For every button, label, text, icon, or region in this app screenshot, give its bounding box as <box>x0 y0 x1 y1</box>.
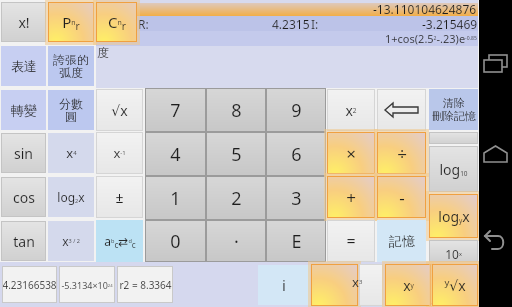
button[interactable]: 清除 刪除記憶 <box>429 89 478 130</box>
button[interactable]: logyx <box>429 194 478 238</box>
staticText: -13.110104624876 <box>373 1 477 16</box>
staticText: = <box>346 230 356 252</box>
staticText: cos <box>13 188 35 207</box>
button[interactable] <box>429 132 478 144</box>
button[interactable]: x! <box>1 2 46 42</box>
staticText: x! <box>18 13 30 32</box>
staticText: Pnr <box>62 12 80 33</box>
button[interactable] <box>377 89 426 131</box>
button[interactable]: 記憶 <box>377 220 426 262</box>
button[interactable]: 7 <box>145 88 206 132</box>
button[interactable]: 10x <box>429 240 478 262</box>
staticText: x3 / 2 <box>62 233 80 249</box>
staticText: R: <box>138 16 149 31</box>
staticText: i <box>282 275 286 295</box>
button[interactable]: · <box>206 220 266 262</box>
button[interactable]: log10 <box>429 146 478 192</box>
button[interactable]: 3 <box>266 176 326 220</box>
staticText: ± <box>115 188 124 207</box>
staticText: x3 <box>352 273 363 289</box>
button[interactable]: E <box>266 220 326 262</box>
staticText: 7 <box>170 98 181 123</box>
staticText: 分數 圓 <box>59 96 83 125</box>
staticText: + <box>346 186 356 209</box>
staticText: r2 = 8.3364 <box>119 278 172 292</box>
button[interactable]: 6 <box>266 132 326 176</box>
staticText: logyx <box>438 207 470 226</box>
button[interactable]: xy <box>385 264 431 306</box>
button[interactable]: 轉變 <box>1 90 46 130</box>
button[interactable]: = <box>327 220 375 262</box>
button[interactable]: -5.3134×1024 <box>59 266 115 303</box>
button[interactable]: 1 <box>145 176 206 220</box>
button[interactable]: x3 / 2 <box>48 221 94 261</box>
staticText: × <box>346 142 356 165</box>
button[interactable]: Cnr <box>96 2 137 42</box>
staticText: 轉變 <box>11 102 37 118</box>
button[interactable]: Pnr <box>48 2 94 42</box>
button[interactable]: 誇張的 弧度 <box>48 46 94 86</box>
staticText: 清除 刪除記憶 <box>432 96 476 123</box>
staticText: 4 <box>170 142 181 167</box>
button[interactable]: x-1 <box>96 132 143 174</box>
staticText: -5.3134×1024 <box>61 279 113 291</box>
staticText: x2 <box>345 101 357 120</box>
button[interactable]: 9 <box>266 88 326 132</box>
button[interactable]: tan <box>1 221 46 261</box>
button[interactable]: ÷ <box>377 132 426 174</box>
staticText: 表達 <box>11 58 37 74</box>
button[interactable]: x4 <box>48 133 94 173</box>
staticText: log2x <box>57 189 85 205</box>
staticText: tan <box>13 232 35 251</box>
staticText: sin <box>14 144 33 163</box>
button[interactable]: sin <box>1 133 46 173</box>
button[interactable]: i <box>258 265 310 305</box>
button[interactable]: 2 <box>206 176 266 220</box>
staticText: 1+cos(2.52-.23)e-0.85 <box>385 31 477 46</box>
staticText: 6 <box>291 142 302 167</box>
staticText: 1 <box>170 186 181 211</box>
button[interactable]: 4.23166538 <box>2 266 57 303</box>
staticText: -3.215469 <box>422 16 478 31</box>
button[interactable]: 分數 圓 <box>48 90 94 130</box>
button[interactable]: y√x <box>432 264 478 306</box>
staticText: 8 <box>231 98 242 123</box>
staticText: 0 <box>170 229 181 254</box>
button[interactable] <box>359 264 383 306</box>
staticText: 誇張的 弧度 <box>53 52 89 81</box>
button[interactable]: - <box>377 176 426 218</box>
button[interactable]: log2x <box>48 177 94 217</box>
staticText: - <box>399 186 405 209</box>
button[interactable]: x2 <box>327 89 375 131</box>
staticText: I: <box>311 16 319 31</box>
button[interactable] <box>479 138 512 172</box>
button[interactable]: 8 <box>206 88 266 132</box>
button[interactable]: 5 <box>206 132 266 176</box>
button[interactable]: r2 = 8.3364 <box>117 266 173 303</box>
staticText: ÷ <box>397 142 407 165</box>
button[interactable] <box>479 45 512 85</box>
button[interactable]: √x <box>96 89 143 131</box>
staticText: 10x <box>445 246 462 262</box>
button[interactable]: 0 <box>145 220 206 262</box>
staticText: 9 <box>291 98 302 123</box>
button[interactable]: + <box>327 176 375 218</box>
staticText: Cnr <box>108 12 126 33</box>
button[interactable]: × <box>327 132 375 174</box>
button[interactable]: 表達 <box>1 46 46 86</box>
staticText: x4 <box>66 144 77 162</box>
button[interactable]: 4 <box>145 132 206 176</box>
button[interactable]: y√x <box>429 264 478 304</box>
staticText: √x <box>111 101 128 120</box>
staticText: 記憶 <box>389 233 415 249</box>
button[interactable]: cos <box>1 177 46 217</box>
button[interactable] <box>311 264 358 306</box>
staticText: 度 <box>97 45 109 60</box>
staticText: · <box>234 229 239 254</box>
staticText: E <box>291 229 302 254</box>
staticText: 5 <box>231 142 242 167</box>
button[interactable] <box>479 225 512 260</box>
staticText: 3 <box>291 186 302 211</box>
button[interactable]: ± <box>96 176 143 218</box>
button[interactable]: abc⇄dc <box>96 220 143 262</box>
